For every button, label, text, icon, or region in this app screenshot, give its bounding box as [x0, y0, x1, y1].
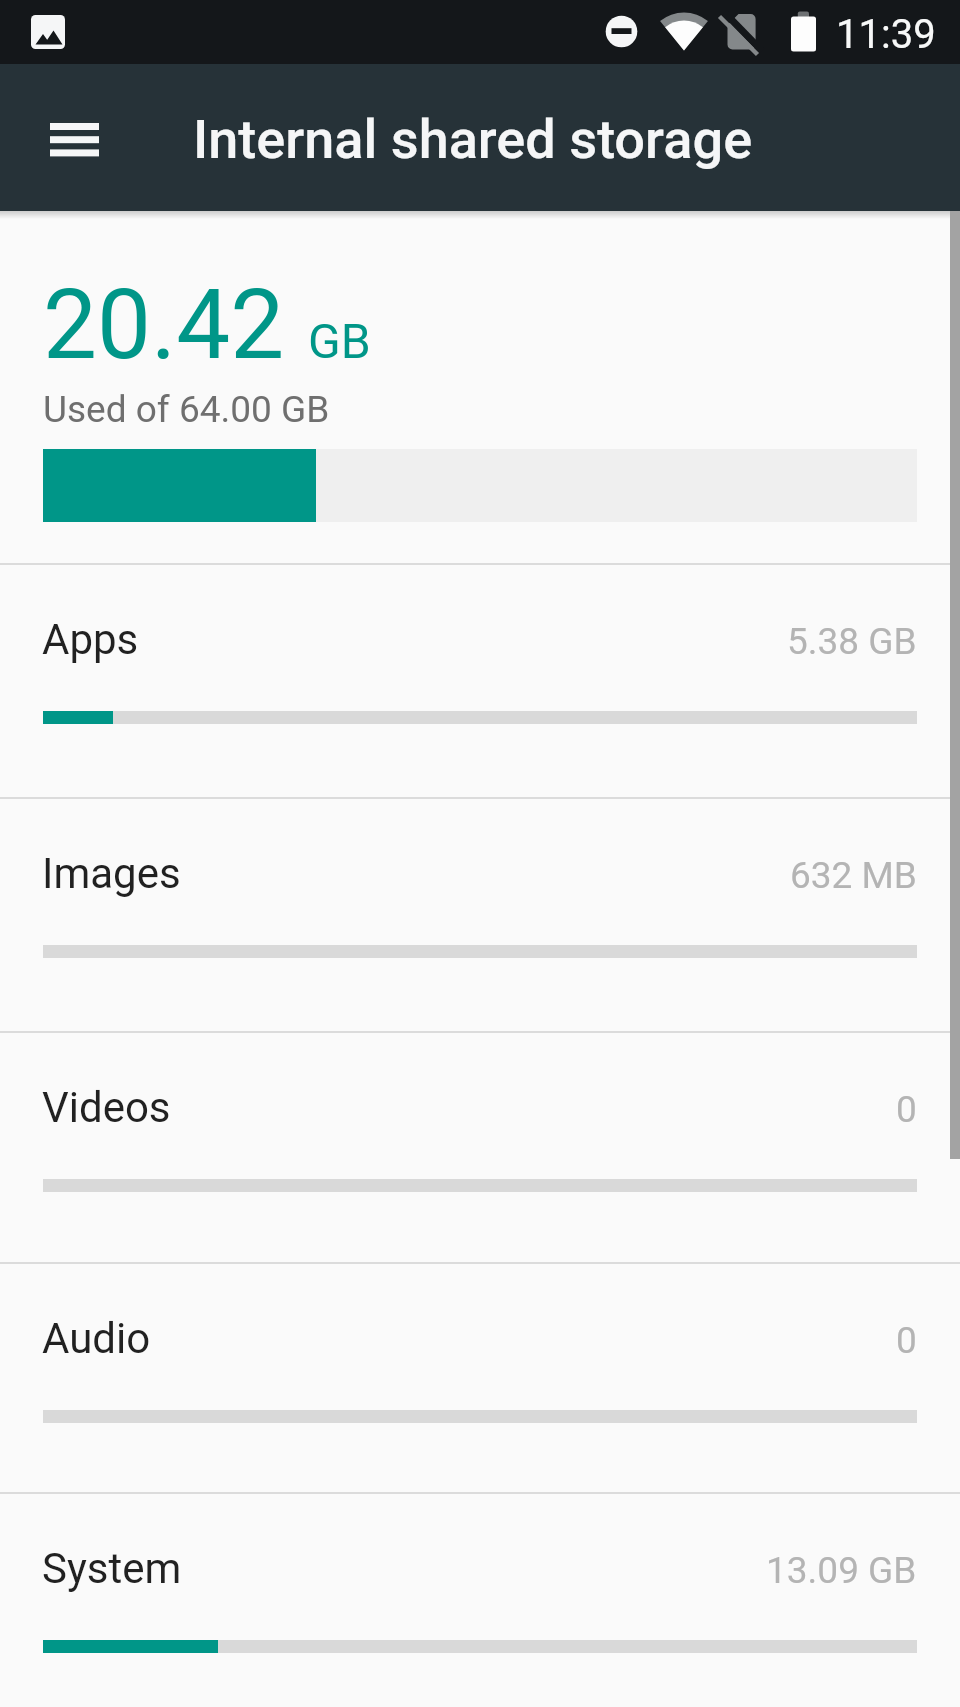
button[interactable]: Apps: [0, 563, 960, 796]
button[interactable]: Images: [0, 797, 960, 1030]
staticText: Images: [42, 849, 181, 898]
staticText: Used of 64.00 GB: [43, 388, 330, 431]
staticText: 0: [896, 1319, 917, 1362]
staticText: 11:39: [836, 11, 936, 58]
button[interactable]: [26, 100, 122, 180]
staticText: Videos: [42, 1083, 171, 1132]
staticText: 632 MB: [790, 854, 917, 897]
button[interactable]: System: [0, 1492, 960, 1707]
button[interactable]: Audio: [0, 1262, 960, 1495]
staticText: 0: [896, 1088, 917, 1131]
staticText: Apps: [42, 615, 139, 664]
staticText: Audio: [42, 1314, 151, 1363]
button[interactable]: Videos: [0, 1031, 960, 1264]
staticText: 5.38 GB: [787, 620, 917, 663]
staticText: Internal shared storage: [193, 108, 753, 171]
staticText: System: [42, 1544, 182, 1593]
staticText: 13.09 GB: [766, 1549, 917, 1592]
staticText: 20.42 GB: [43, 269, 371, 382]
